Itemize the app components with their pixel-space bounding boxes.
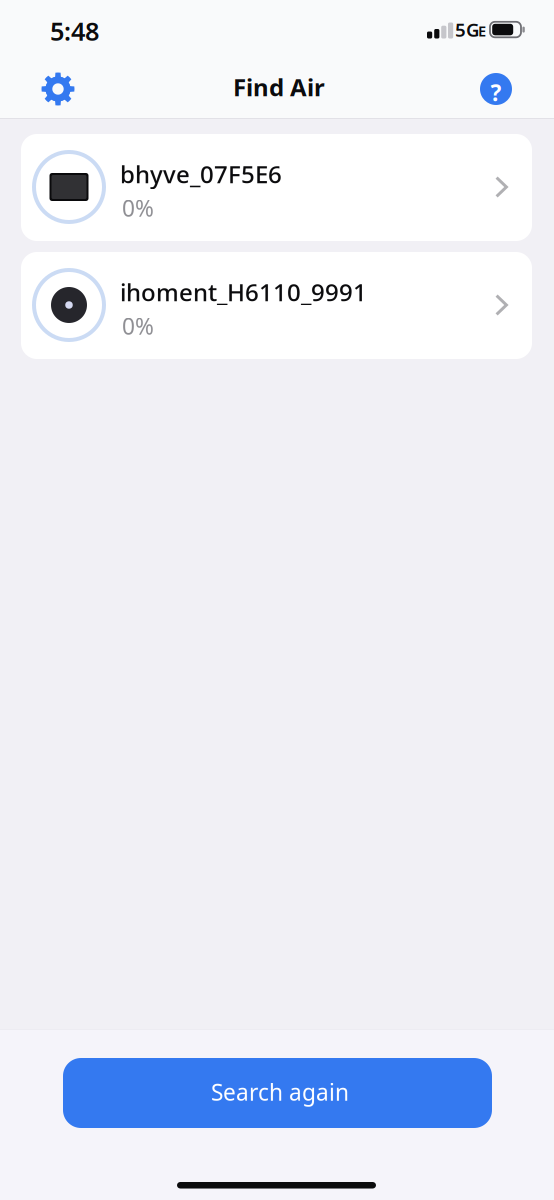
staticText: ihoment_H6110_9991 (120, 276, 367, 308)
button[interactable]: Help (465, 60, 527, 118)
staticText: 0% (122, 311, 154, 341)
button[interactable]: bhyve_07F5E6 (21, 134, 532, 241)
staticText: bhyve_07F5E6 (120, 158, 282, 190)
staticText: ? (490, 77, 501, 108)
staticText: 5:48 (50, 14, 99, 48)
staticText: E (478, 21, 486, 40)
button[interactable]: Search again (63, 1058, 492, 1128)
staticText: Search again (211, 1077, 349, 1107)
staticText: 5G (455, 17, 480, 42)
staticText: Find Air (233, 71, 325, 103)
staticText: 0% (122, 193, 154, 223)
button[interactable]: Settings (27, 60, 89, 118)
button[interactable]: ihoment_H6110_9991 (21, 252, 532, 359)
